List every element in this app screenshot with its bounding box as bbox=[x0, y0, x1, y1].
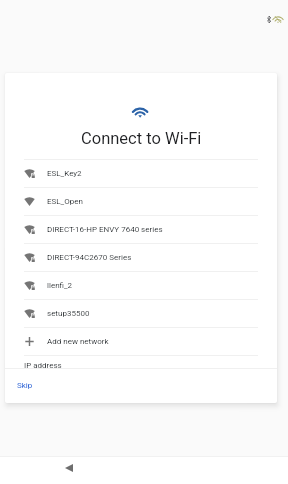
staticText: DIRECT-94C2670 Series bbox=[47, 253, 132, 262]
button[interactable]: DIRECT-94C2670 Series bbox=[5, 244, 277, 271]
staticText: Add new network bbox=[47, 337, 109, 346]
staticText: IP address bbox=[24, 361, 62, 370]
button[interactable]: llenfi_2 bbox=[5, 272, 277, 299]
staticText: Skip bbox=[17, 381, 33, 390]
button[interactable]: Add new network bbox=[5, 328, 277, 355]
button[interactable]: DIRECT-16-HP ENVY 7640 series bbox=[5, 216, 277, 243]
staticText: DIRECT-16-HP ENVY 7640 series bbox=[47, 225, 163, 234]
button[interactable]: Skip bbox=[12, 377, 38, 394]
staticText: Connect to Wi-Fi bbox=[81, 129, 202, 148]
staticText: setup35500 bbox=[47, 309, 90, 318]
button[interactable]: Back bbox=[58, 457, 80, 479]
staticText: llenfi_2 bbox=[47, 281, 73, 290]
staticText: ESL_Open bbox=[47, 197, 83, 206]
button[interactable]: ESL_Key2 bbox=[5, 160, 277, 187]
button[interactable]: ESL_Open bbox=[5, 188, 277, 215]
button[interactable]: setup35500 bbox=[5, 300, 277, 327]
staticText: ESL_Key2 bbox=[47, 169, 82, 178]
